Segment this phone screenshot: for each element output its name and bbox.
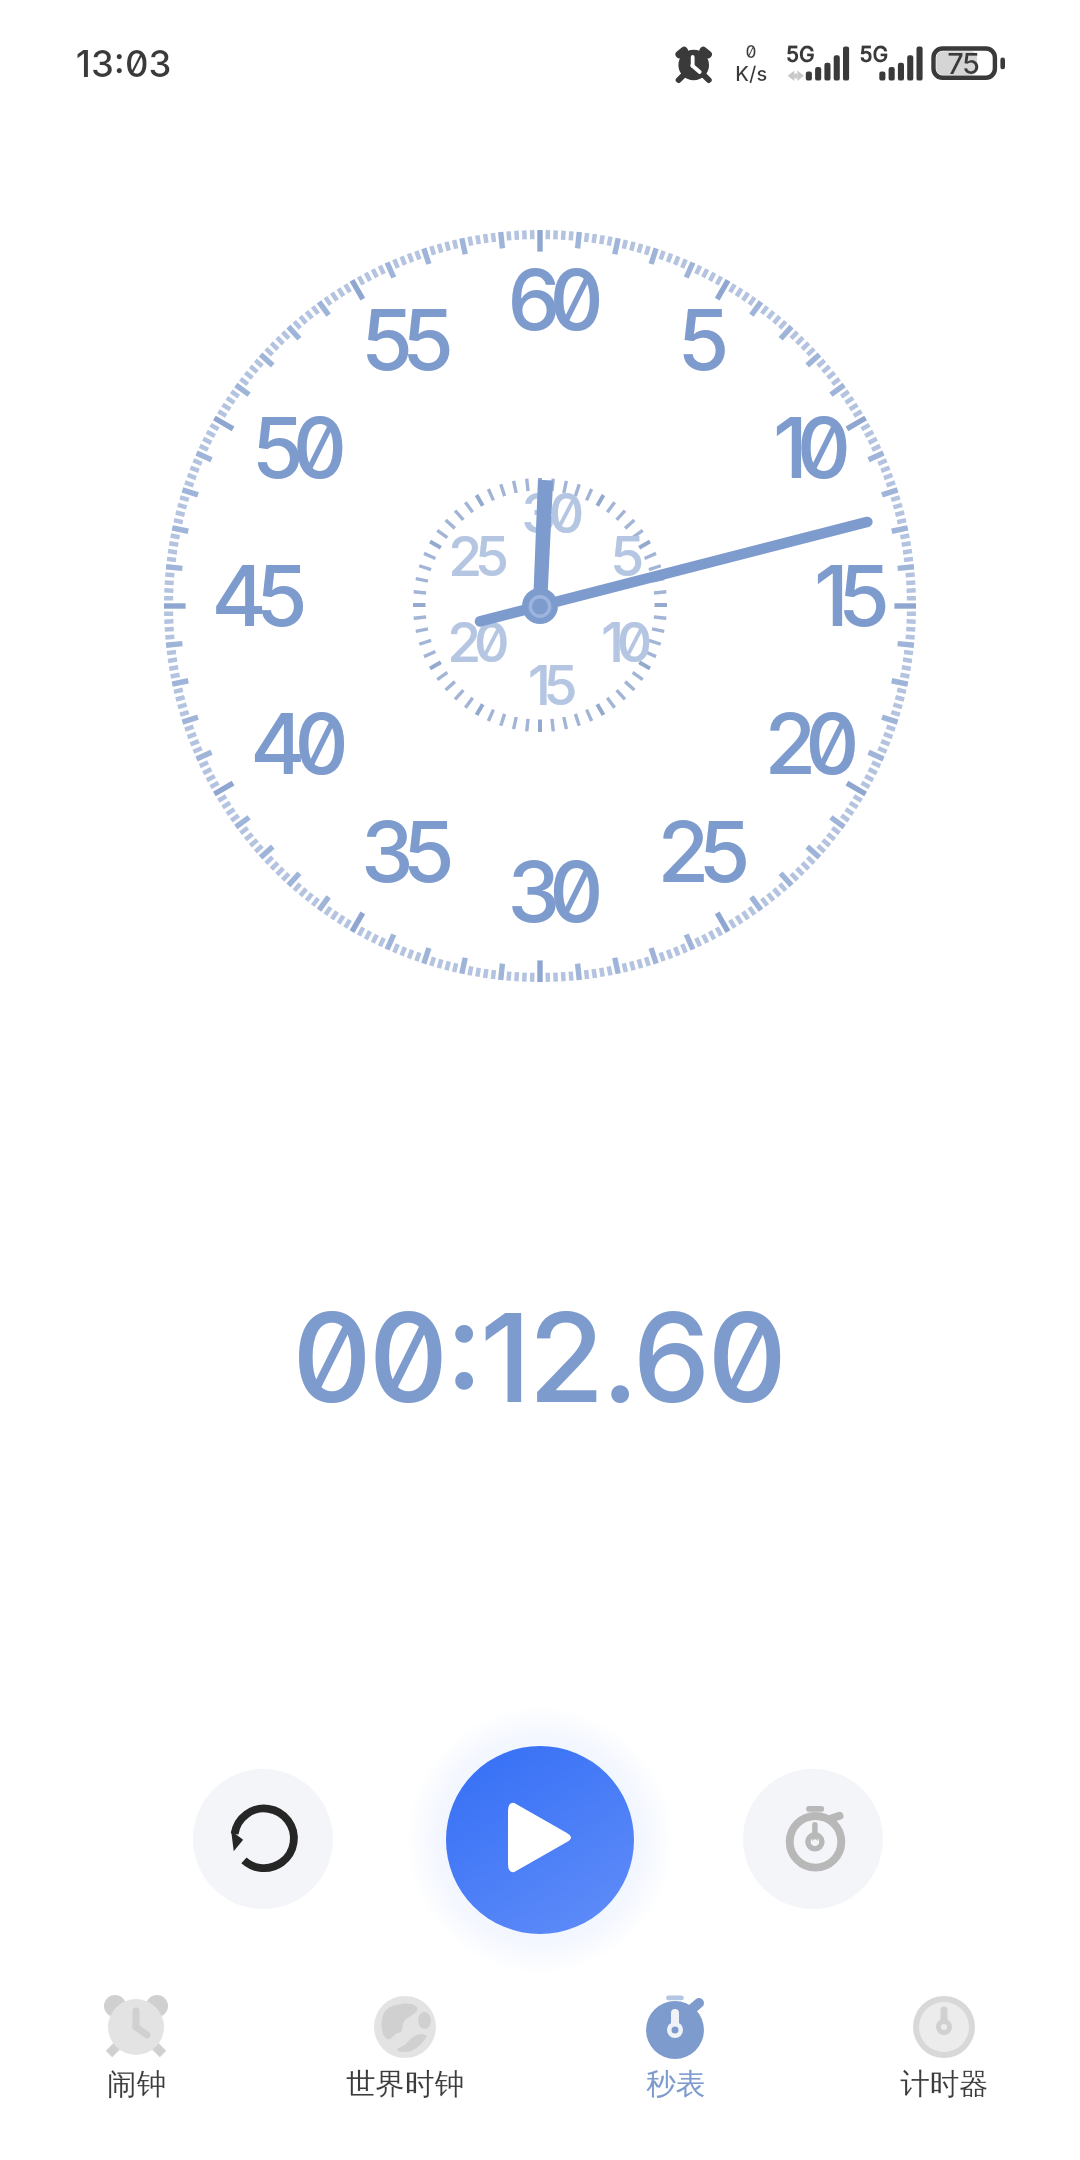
button[interactable]: Reset xyxy=(193,1769,333,1909)
staticText: 闹钟 xyxy=(107,2066,166,2103)
staticText: 秒表 xyxy=(646,2066,705,2103)
button[interactable]: Lap xyxy=(743,1769,883,1909)
button[interactable]: 闹钟 xyxy=(2,1985,270,2103)
button[interactable]: 计时器 xyxy=(810,1985,1078,2103)
button[interactable]: 秒表 xyxy=(541,1985,809,2103)
button[interactable]: 世界时钟 xyxy=(271,1985,539,2103)
button[interactable]: Start xyxy=(446,1746,634,1934)
staticText: 计时器 xyxy=(900,2066,989,2103)
staticText: 世界时钟 xyxy=(346,2066,464,2103)
